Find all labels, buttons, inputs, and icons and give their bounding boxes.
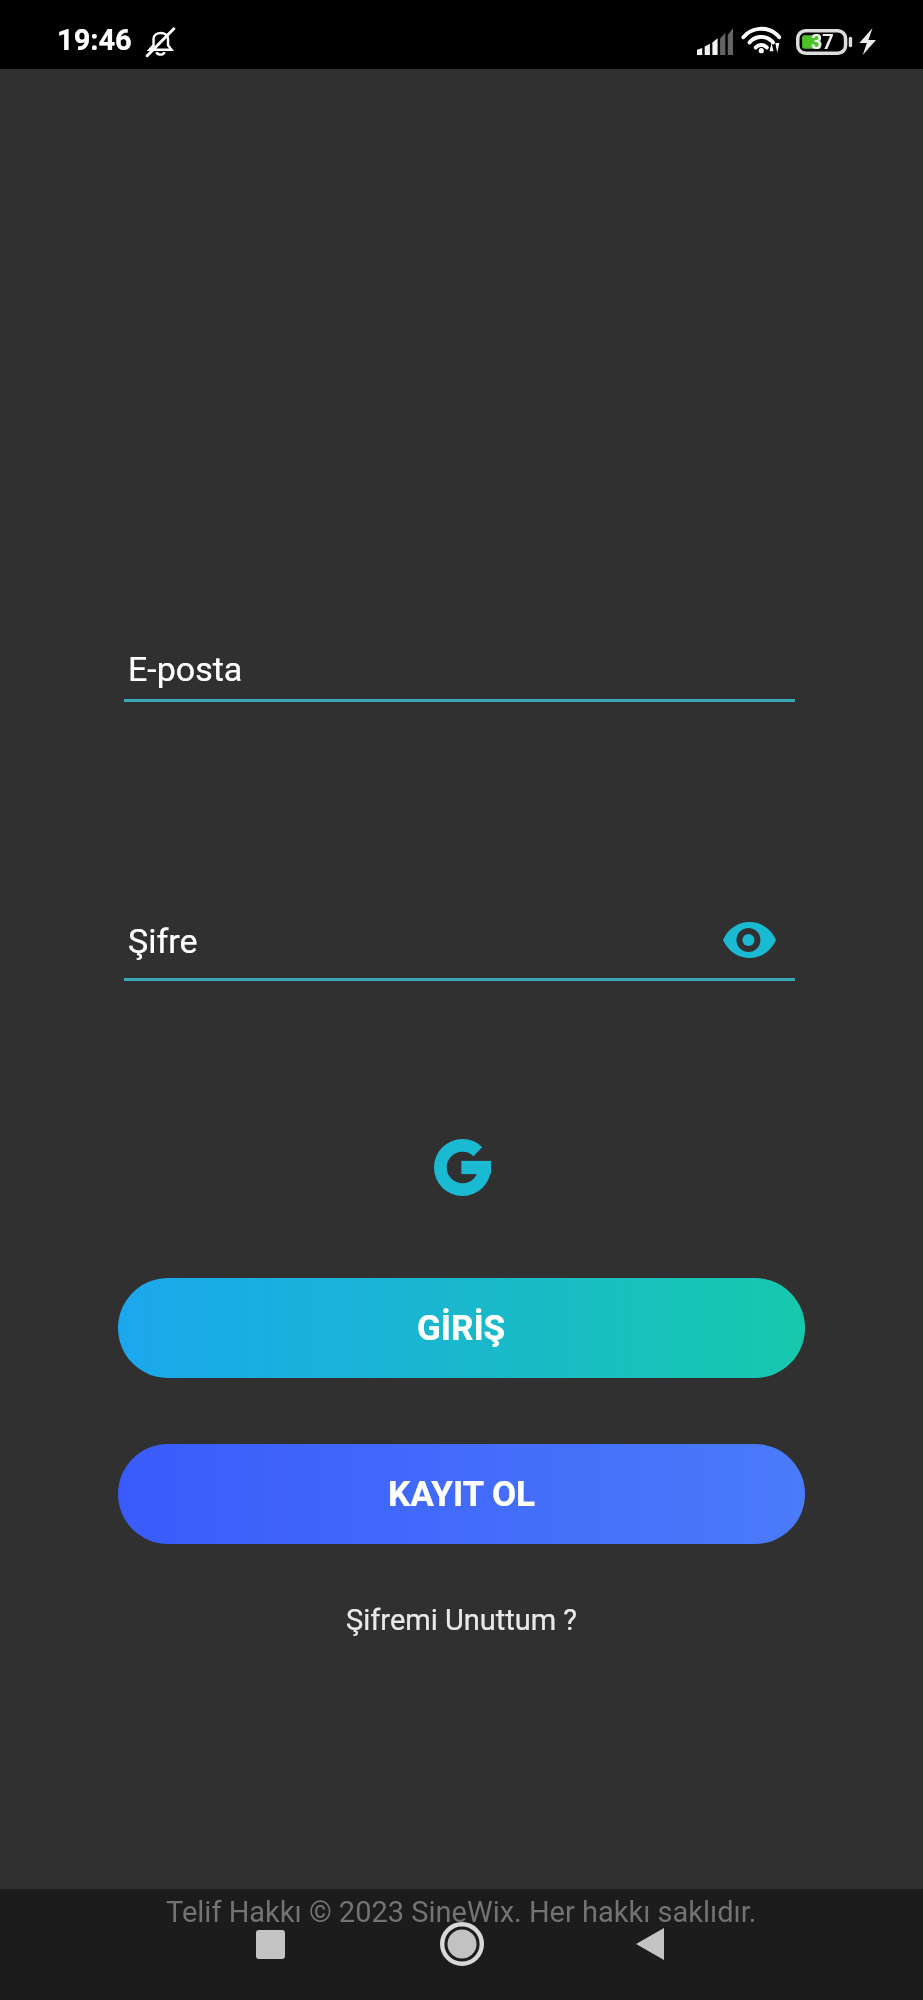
- staticText: Şifremi Unuttum ?: [346, 1603, 578, 1637]
- button[interactable]: Home: [422, 1904, 502, 1984]
- button[interactable]: Şifremi Unuttum ?: [322, 1593, 602, 1647]
- staticText: E-posta: [128, 649, 243, 689]
- staticText: Şifre: [128, 921, 198, 961]
- staticText: 19:46: [57, 23, 132, 57]
- button[interactable]: Şifreyi göster: [719, 910, 779, 970]
- button[interactable]: GİRİŞ: [118, 1278, 805, 1378]
- button[interactable]: [124, 913, 795, 981]
- button[interactable]: Recents: [230, 1904, 310, 1984]
- staticText: Telif Hakkı © 2023 SineWix. Her hakkı sa…: [166, 1895, 757, 1929]
- staticText: KAYIT OL: [388, 1474, 536, 1515]
- staticText: 37: [811, 30, 834, 53]
- button[interactable]: [124, 641, 795, 702]
- staticText: GİRİŞ: [417, 1308, 506, 1349]
- button[interactable]: Back: [610, 1904, 690, 1984]
- button[interactable]: KAYIT OL: [118, 1444, 805, 1544]
- button[interactable]: Google ile giriş yap: [419, 1124, 505, 1210]
